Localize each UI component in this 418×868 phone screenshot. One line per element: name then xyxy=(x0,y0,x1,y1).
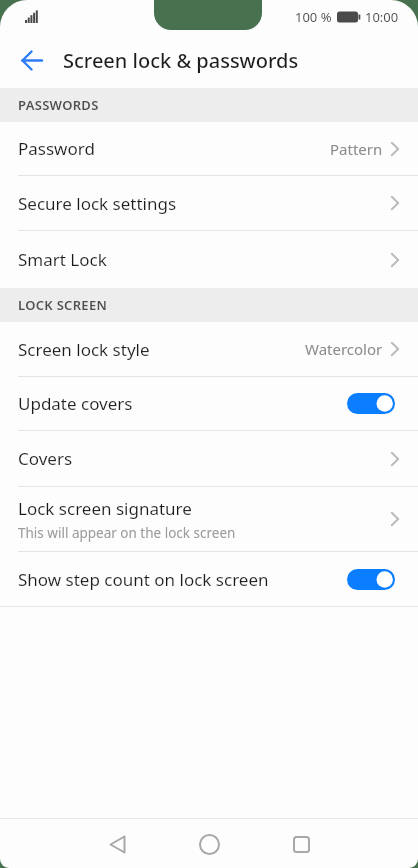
staticText: Screen lock style xyxy=(18,338,150,361)
button[interactable]: Secure lock settings xyxy=(0,176,418,230)
button[interactable]: Password xyxy=(0,122,418,175)
button[interactable] xyxy=(179,821,239,867)
staticText: 10:00 xyxy=(365,8,399,26)
staticText: Screen lock & passwords xyxy=(63,47,299,74)
staticText: PASSWORDS xyxy=(18,96,99,114)
staticText: This will appear on the lock screen xyxy=(18,524,236,542)
button[interactable]: Screen lock style xyxy=(0,322,418,376)
button[interactable] xyxy=(347,393,395,414)
staticText: Show step count on lock screen xyxy=(18,568,269,591)
button[interactable]: Covers xyxy=(0,431,418,486)
button[interactable]: Lock screen signature xyxy=(0,487,418,551)
staticText: Password xyxy=(18,137,95,160)
staticText: Secure lock settings xyxy=(18,192,177,215)
staticText: Smart Lock xyxy=(18,248,107,271)
staticText: LOCK SCREEN xyxy=(18,296,108,314)
staticText: Pattern xyxy=(330,139,383,159)
staticText: Update covers xyxy=(18,392,133,415)
button[interactable]: Update covers xyxy=(0,377,418,430)
button[interactable] xyxy=(14,42,50,78)
staticText: Watercolor xyxy=(305,339,383,359)
staticText: 100 % xyxy=(295,8,332,26)
button[interactable] xyxy=(87,821,147,867)
button[interactable] xyxy=(347,569,395,590)
button[interactable]: Smart Lock xyxy=(0,231,418,288)
staticText: Lock screen signature xyxy=(18,497,192,520)
staticText: Covers xyxy=(18,447,73,470)
button[interactable] xyxy=(271,821,331,867)
button[interactable]: Show step count on lock screen xyxy=(0,552,418,606)
